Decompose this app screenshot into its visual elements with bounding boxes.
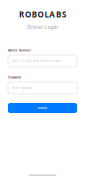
- button[interactable]: LOGIN: [8, 103, 77, 113]
- staticText: Enter Password: [12, 86, 32, 90]
- staticText: Enter 10 digit valid mobile number: [12, 59, 62, 63]
- staticText: Mobile Number: [8, 49, 31, 52]
- staticText: LOGIN: [38, 106, 47, 110]
- staticText: Driver Login: [27, 23, 58, 31]
- staticText: Password: [8, 76, 21, 79]
- staticText: ROBOLABS: [19, 9, 66, 20]
